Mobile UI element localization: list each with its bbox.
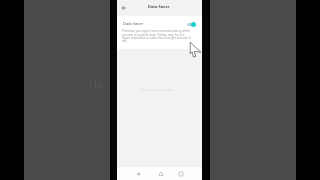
button[interactable]: Data Saver — [117, 16, 202, 28]
button[interactable]: Back — [133, 169, 142, 178]
staticText: Unrestricted data use — [139, 87, 174, 92]
button[interactable]: Recent apps — [176, 169, 185, 178]
staticText: Data Saver — [123, 21, 144, 26]
button[interactable]: Navigate up — [119, 3, 129, 13]
staticText: Prevents your apps from communicating wh… — [122, 29, 191, 43]
staticText: Ho — [89, 76, 104, 91]
button[interactable]: Data Saver switch — [187, 22, 196, 27]
staticText: Data Saver — [148, 4, 170, 9]
button[interactable]: Home — [156, 169, 165, 178]
